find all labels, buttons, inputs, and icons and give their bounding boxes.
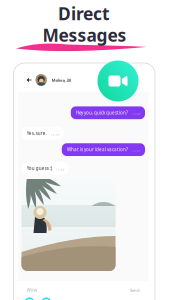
staticText: 13:08: [56, 168, 65, 171]
staticText: 13:06: [132, 112, 141, 116]
staticText: Wow: [26, 287, 37, 293]
button[interactable]: Back: [22, 71, 35, 88]
staticText: 13:06: [51, 133, 60, 136]
button[interactable]: Stickers: [42, 298, 50, 300]
button[interactable]: Send: [130, 287, 140, 293]
staticText: Direct: [58, 2, 110, 25]
button[interactable]: Video call: [97, 60, 138, 101]
staticText: 13:07: [132, 149, 141, 153]
staticText: What is your ideal vacation?: [67, 146, 128, 153]
staticText: Messages: [42, 23, 126, 47]
button[interactable]: Camera: [25, 298, 33, 300]
staticText: Hey you, quick question?: [76, 110, 128, 116]
staticText: You guess :): [27, 165, 52, 171]
staticText: Send: [130, 287, 140, 293]
staticText: Melina, 24: [51, 77, 70, 83]
staticText: Yes, sure.: [27, 130, 47, 136]
